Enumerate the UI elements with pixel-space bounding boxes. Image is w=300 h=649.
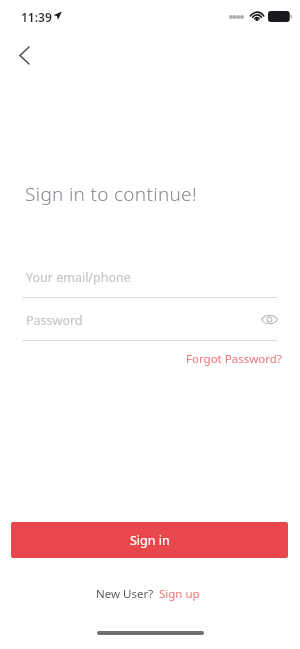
button[interactable]: Back [7,38,41,72]
button[interactable]: Forgot Password? [186,351,282,367]
staticText: Sign in [130,532,170,549]
staticText: Forgot Password? [186,351,282,367]
staticText: 11:39 [21,9,52,25]
staticText: Your email/phone [26,269,131,286]
staticText: Sign up [159,586,200,602]
staticText: New User? [96,586,154,602]
button[interactable]: Password [22,312,277,341]
staticText: Sign in to continue! [25,181,197,207]
button[interactable]: Sign up [154,584,205,604]
staticText: Password [26,312,83,329]
button[interactable]: Sign in [11,522,288,558]
button[interactable]: Show password [256,306,282,332]
button[interactable]: Your email/phone [22,269,277,298]
